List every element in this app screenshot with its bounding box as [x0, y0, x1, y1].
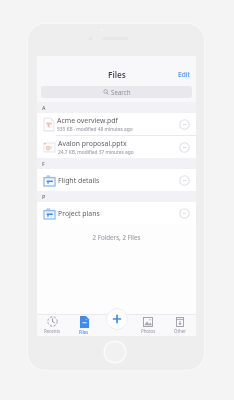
button[interactable]: Details [179, 119, 190, 130]
staticText: F [42, 160, 45, 167]
staticText: 2 Folders, 2 Files [37, 233, 196, 241]
staticText: Project plans [58, 209, 179, 218]
staticText: P [42, 193, 46, 200]
button[interactable]: Photos [132, 314, 164, 336]
button[interactable]: Details [179, 208, 190, 219]
staticText: 535 KB · modified 48 minutes ago [57, 126, 133, 133]
button[interactable]: Other [164, 314, 196, 336]
button[interactable]: Details [179, 142, 190, 153]
staticText: Recents [44, 328, 61, 334]
button[interactable]: Details [179, 175, 190, 186]
staticText: Files [79, 329, 89, 335]
staticText: Avalon proposal.pptx [58, 139, 127, 148]
staticText: Flight details [58, 176, 179, 185]
button[interactable]: Edit [172, 66, 196, 83]
staticText: A [42, 104, 46, 111]
button[interactable]: Recents [37, 314, 68, 336]
staticText: Acme overview.pdf [57, 116, 118, 125]
staticText: Photos [141, 328, 156, 334]
staticText: Search [111, 88, 131, 96]
button[interactable]: Flight details [37, 169, 196, 191]
staticText: Files [108, 69, 126, 80]
staticText: Edit [178, 70, 190, 79]
staticText: 24.7 KB, modified 37 minutes ago [58, 149, 134, 156]
button[interactable]: Search [41, 86, 192, 98]
button[interactable]: Project plans [37, 202, 196, 224]
button[interactable]: Avalon proposal.pptx [37, 136, 196, 158]
button[interactable]: Add [106, 308, 128, 330]
button[interactable]: Files [68, 314, 100, 336]
staticText: Other [174, 328, 187, 334]
button[interactable]: Acme overview.pdf [37, 113, 196, 135]
